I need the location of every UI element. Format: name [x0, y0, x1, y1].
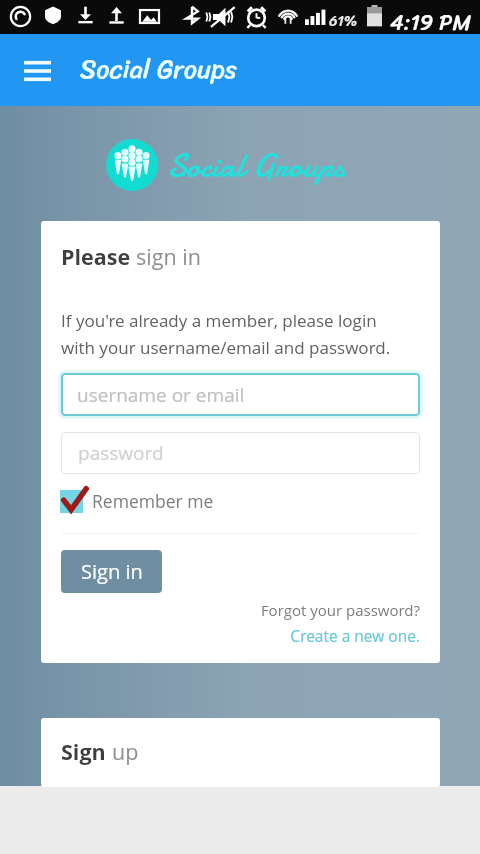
staticText: Sign in [81, 558, 143, 585]
staticText: sign in [136, 242, 201, 271]
staticText: up [112, 737, 139, 766]
staticText: 61% [329, 8, 358, 35]
staticText: Please [61, 242, 136, 271]
staticText: username or email [77, 382, 245, 408]
staticText: password [78, 440, 164, 466]
button[interactable]: Sign in [61, 550, 162, 593]
staticText: Social Groups [167, 143, 345, 190]
button[interactable]: Open navigation drawer [10, 34, 64, 106]
staticText: 4:19 PM [390, 3, 472, 37]
button[interactable]: username or email [61, 373, 420, 416]
button[interactable]: Forgot your password? [61, 600, 420, 620]
button[interactable]: password [61, 432, 420, 474]
button[interactable]: Remember me [60, 489, 214, 513]
staticText: Remember me [92, 489, 214, 513]
staticText: Social Groups [80, 46, 237, 92]
button[interactable]: Create a new one. [61, 625, 420, 646]
staticText: If you're already a member, please login… [61, 309, 391, 359]
staticText: Sign [61, 737, 112, 766]
